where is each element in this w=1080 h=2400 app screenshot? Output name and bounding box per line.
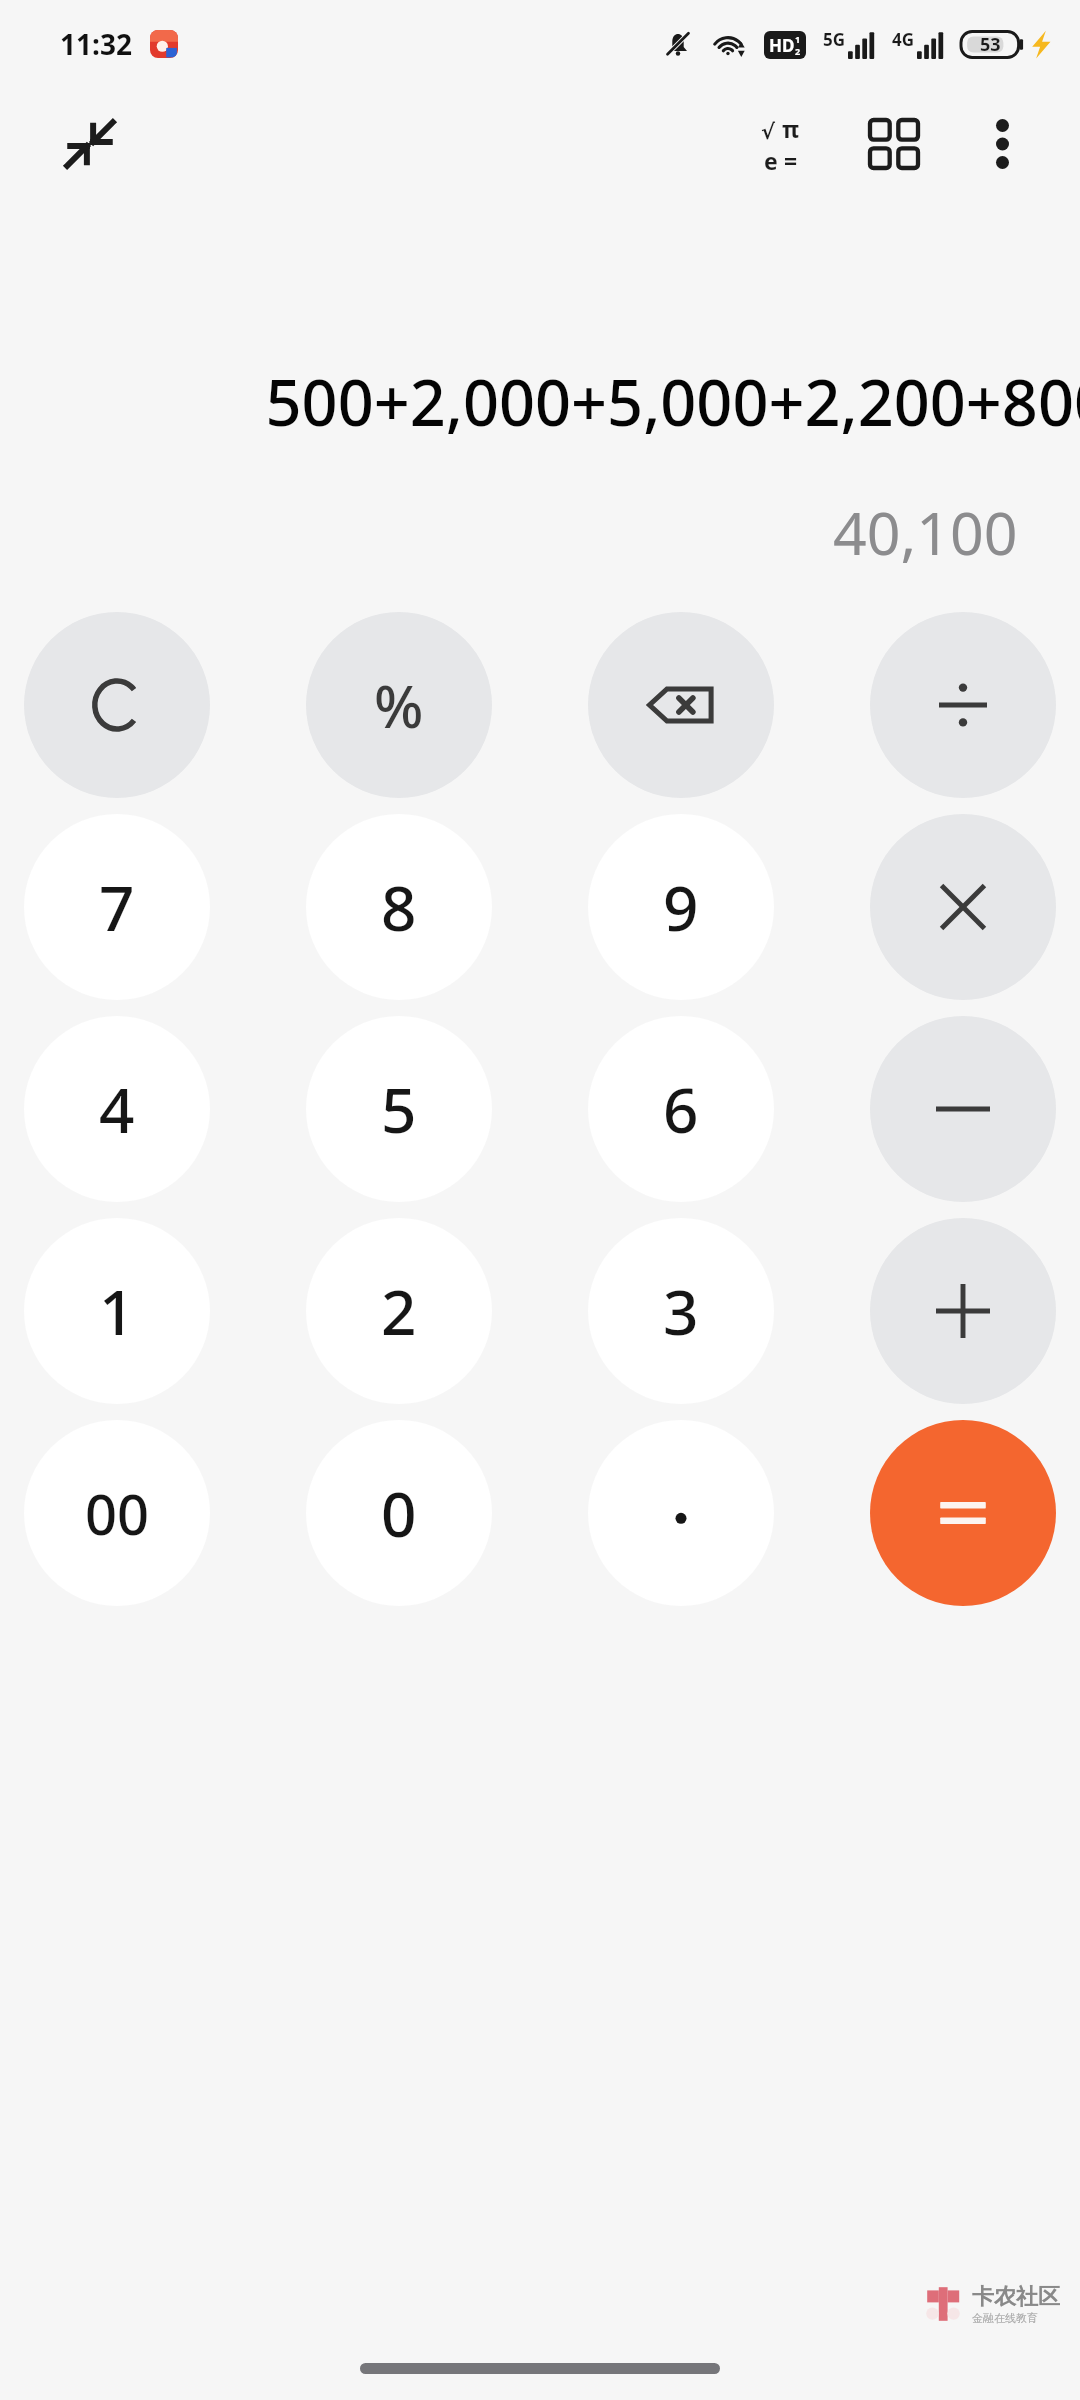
button[interactable]: Multiply xyxy=(870,814,1056,1000)
staticText: 7 xyxy=(99,865,135,949)
button[interactable]: 7 xyxy=(24,814,210,1000)
button[interactable]: Clear xyxy=(24,612,210,798)
button[interactable]: 4 xyxy=(24,1016,210,1202)
button[interactable]: Backspace xyxy=(588,612,774,798)
staticText: 00 xyxy=(85,1475,150,1551)
staticText: 金融在线教育 xyxy=(972,2311,1038,2325)
staticText: 5G xyxy=(823,28,846,51)
button[interactable]: Collapse xyxy=(50,104,130,184)
staticText: 4 xyxy=(99,1067,135,1151)
button[interactable]: 2 xyxy=(306,1218,492,1404)
button[interactable]: Minus xyxy=(870,1016,1056,1202)
staticText: e xyxy=(764,145,778,176)
button[interactable]: Percent xyxy=(306,612,492,798)
button[interactable]: More options xyxy=(960,102,1044,186)
staticText: 53 xyxy=(980,32,1001,57)
staticText: 6 xyxy=(663,1067,699,1151)
staticText: 1 xyxy=(795,33,801,45)
button[interactable]: 9 xyxy=(588,814,774,1000)
button[interactable]: Plus xyxy=(870,1218,1056,1404)
button[interactable]: Decimal point xyxy=(588,1420,774,1606)
staticText: % xyxy=(374,666,424,745)
staticText: 2 xyxy=(381,1269,417,1353)
staticText: 1 xyxy=(99,1269,135,1353)
staticText: 500+2,000+5,000+2,200+800+ xyxy=(265,359,1080,445)
staticText: 5 xyxy=(381,1067,417,1151)
staticText: 卡农社区 xyxy=(972,2283,1060,2311)
staticText: 3 xyxy=(663,1269,699,1353)
staticText: 0 xyxy=(381,1471,417,1555)
staticText: 8 xyxy=(381,865,417,949)
button[interactable]: Equals xyxy=(870,1420,1056,1606)
button[interactable]: 5 xyxy=(306,1016,492,1202)
staticText: = xyxy=(784,145,798,176)
button[interactable]: 0 xyxy=(306,1420,492,1606)
button[interactable]: 3 xyxy=(588,1218,774,1404)
button[interactable]: 8 xyxy=(306,814,492,1000)
button[interactable]: Scientific mode xyxy=(736,100,824,188)
button[interactable]: Divide xyxy=(870,612,1056,798)
staticText: √ xyxy=(761,120,776,144)
button[interactable]: 1 xyxy=(24,1218,210,1404)
staticText: 11:32 xyxy=(60,25,132,63)
staticText: 9 xyxy=(663,865,699,949)
staticText: 4G xyxy=(892,28,915,51)
button[interactable]: 00 xyxy=(24,1420,210,1606)
button[interactable]: Grid xyxy=(850,100,938,188)
staticText: 40,100 xyxy=(833,492,1018,572)
button[interactable]: 6 xyxy=(588,1016,774,1202)
staticText: π xyxy=(782,113,800,144)
staticText: HD xyxy=(769,34,795,57)
staticText: 2 xyxy=(795,45,801,57)
